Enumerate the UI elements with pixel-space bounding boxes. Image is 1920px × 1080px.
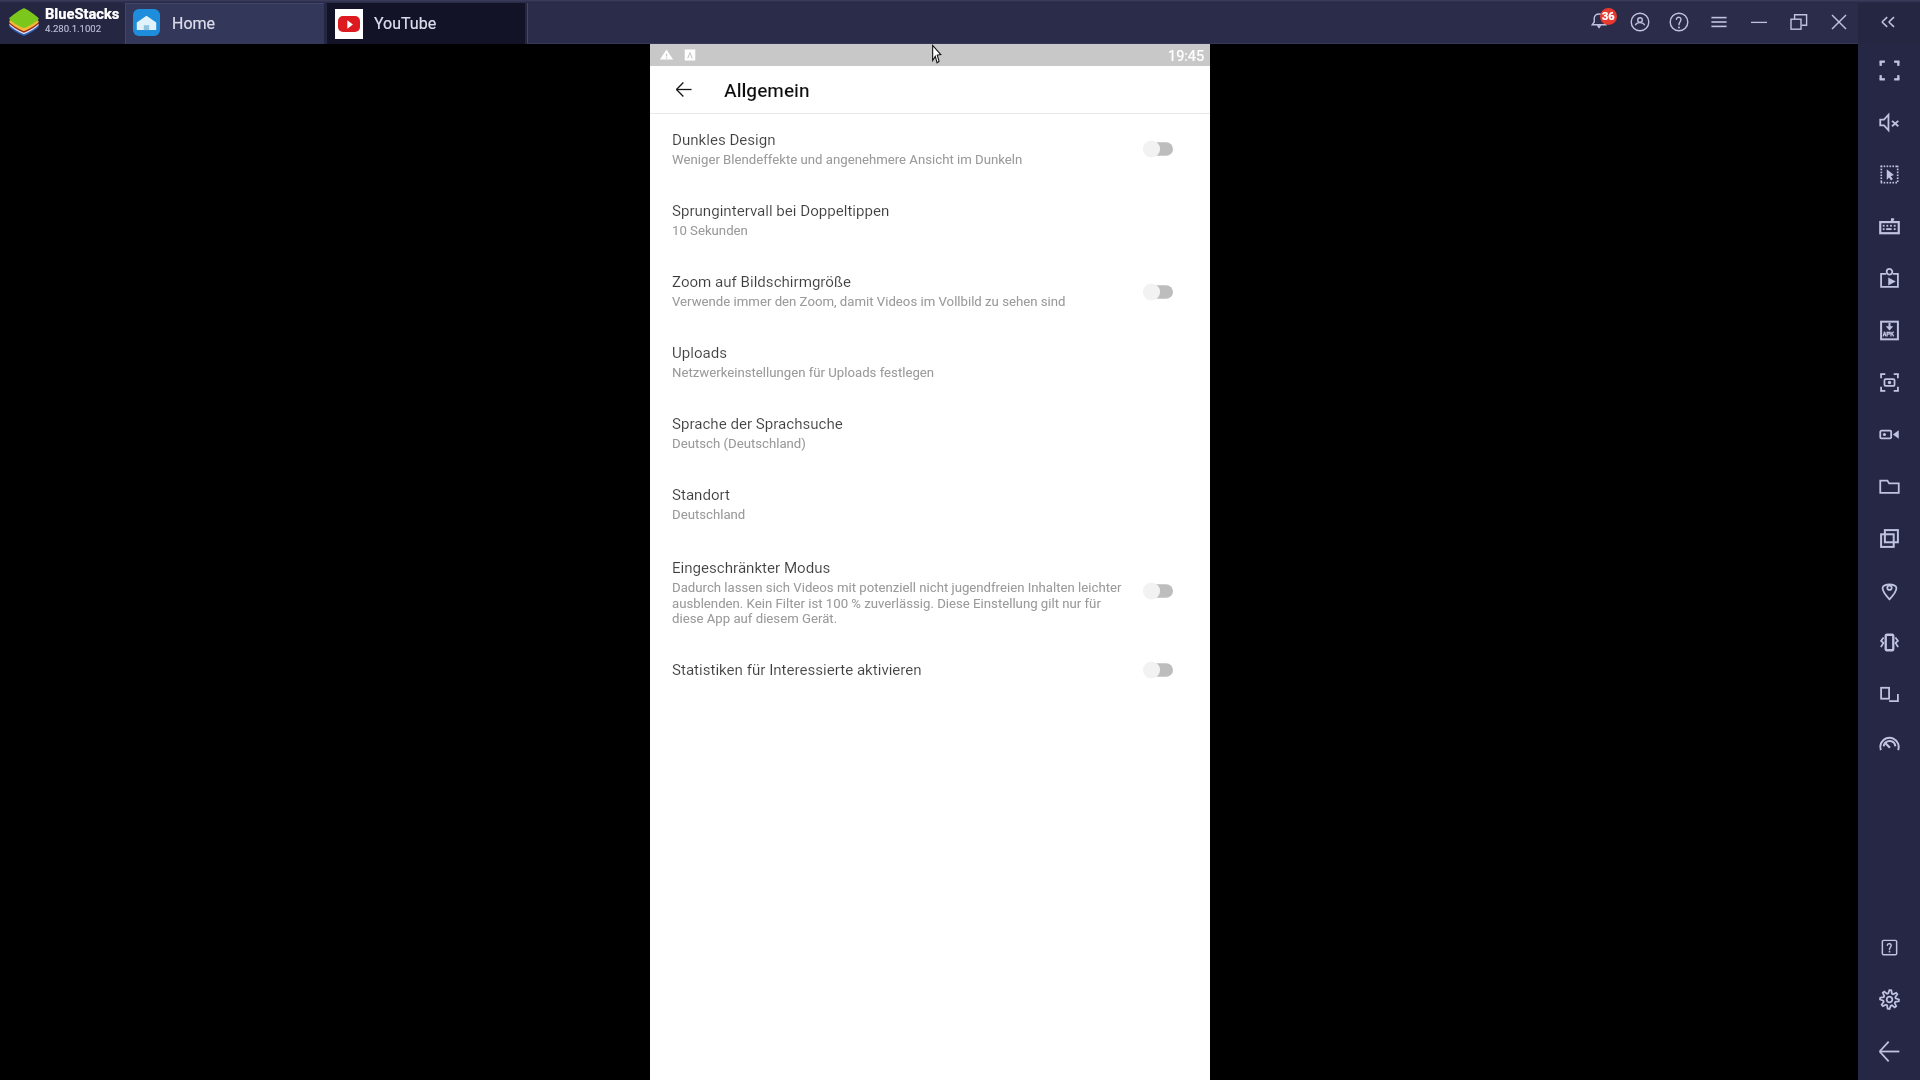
button[interactable]: Toggle Zoom auf Bildschirmgröße	[1138, 276, 1186, 308]
staticText: Sprungintervall bei Doppeltippen	[672, 202, 890, 220]
staticText: ausblenden. Kein Filter ist 100 % zuverl…	[672, 596, 1101, 611]
staticText: BlueStacks	[45, 5, 120, 22]
button[interactable]: Dunkles Design	[650, 121, 1210, 171]
button[interactable]: Help	[1662, 5, 1696, 39]
button[interactable]: Multi instance	[1871, 520, 1907, 556]
button[interactable]: Menu	[1702, 5, 1736, 39]
button[interactable]: Screenshot	[1871, 364, 1907, 400]
button[interactable]: Toggle Eingeschränkter Modus	[1138, 575, 1186, 607]
button[interactable]: Gyroscope	[1871, 728, 1907, 764]
staticText: Netzwerkeinstellungen für Uploads festle…	[672, 365, 935, 380]
button[interactable]: Back	[1871, 1033, 1907, 1069]
staticText: 19:45	[1168, 48, 1205, 65]
button[interactable]: Pointer	[1871, 156, 1907, 192]
button[interactable]: Media manager	[1871, 468, 1907, 504]
staticText: Allgemein	[724, 79, 810, 101]
staticText: Weniger Blendeffekte und angenehmere Ans…	[672, 152, 1023, 167]
button[interactable]: Sprache der Sprachsuche	[650, 405, 1210, 455]
staticText: 4.280.1.1002	[45, 23, 102, 34]
staticText: 10 Sekunden	[672, 223, 748, 238]
button[interactable]: Sprungintervall bei Doppeltippen	[650, 192, 1210, 242]
staticText: Zoom auf Bildschirmgröße	[672, 273, 851, 291]
staticText: YouTube	[374, 14, 437, 33]
button[interactable]: Eingeschränkter Modus	[650, 549, 1210, 631]
staticText: Home	[172, 14, 216, 33]
button[interactable]: Toggle Statistiken für Interessierte akt…	[1138, 654, 1186, 686]
button[interactable]: Shake	[1871, 624, 1907, 660]
button[interactable]: Keyboard controls	[1871, 208, 1907, 244]
staticText: Standort	[672, 486, 730, 504]
button[interactable]: Standort	[650, 476, 1210, 526]
button[interactable]: Location	[1871, 572, 1907, 608]
button[interactable]: Home	[125, 3, 324, 44]
button[interactable]: Statistiken für Interessierte aktivieren	[650, 651, 1210, 693]
button[interactable]: Record screen	[1871, 416, 1907, 452]
staticText: Statistiken für Interessierte aktivieren	[672, 661, 922, 679]
staticText: diese App auf diesem Gerät.	[672, 611, 838, 626]
staticText: Deutsch (Deutschland)	[672, 436, 806, 451]
button[interactable]: Minimize	[1742, 5, 1776, 39]
button[interactable]: Help	[1871, 929, 1907, 965]
staticText: Dadurch lassen sich Videos mit potenziel…	[672, 580, 1122, 595]
staticText: Dunkles Design	[672, 131, 776, 149]
button[interactable]: Toggle Dunkles Design	[1138, 133, 1186, 165]
button[interactable]: Restore	[1782, 5, 1816, 39]
button[interactable]: Back	[676, 82, 692, 97]
button[interactable]: Zoom auf Bildschirmgröße	[650, 263, 1210, 313]
staticText: Deutschland	[672, 507, 746, 522]
button[interactable]: Close	[1822, 5, 1856, 39]
button[interactable]: Mute	[1871, 104, 1907, 140]
staticText: 36	[1602, 10, 1615, 23]
staticText: Uploads	[672, 344, 728, 362]
button[interactable]: YouTube	[327, 3, 525, 44]
button[interactable]: Install APK	[1871, 312, 1907, 348]
button[interactable]: Collapse sidebar	[1871, 5, 1905, 39]
button[interactable]: BlueStacks	[0, 0, 120, 44]
staticText: Eingeschränkter Modus	[672, 559, 831, 577]
button[interactable]: Macro recorder	[1871, 260, 1907, 296]
button[interactable]: Notifications	[1583, 5, 1617, 39]
button[interactable]: Uploads	[650, 334, 1210, 384]
button[interactable]: Rotate	[1871, 676, 1907, 712]
staticText: Verwende immer den Zoom, damit Videos im…	[672, 294, 1066, 309]
button[interactable]: Settings	[1871, 981, 1907, 1017]
button[interactable]: Account	[1623, 5, 1657, 39]
button[interactable]: Fullscreen	[1871, 52, 1907, 88]
staticText: Sprache der Sprachsuche	[672, 415, 843, 433]
